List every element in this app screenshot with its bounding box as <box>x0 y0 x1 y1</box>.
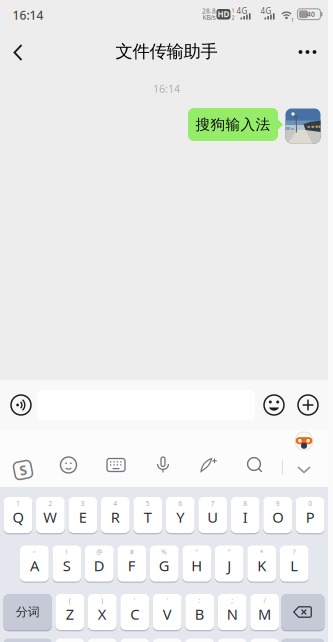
staticText: KB/s <box>202 13 215 22</box>
button[interactable]: ! <box>52 544 81 582</box>
button[interactable]: ~ <box>20 544 49 582</box>
button[interactable] <box>105 454 127 476</box>
staticText: 文件传输助手 <box>115 41 217 62</box>
button[interactable] <box>285 108 320 143</box>
button[interactable] <box>294 430 314 451</box>
button[interactable] <box>57 454 79 476</box>
staticText: ; <box>231 596 233 605</box>
staticText: HD <box>217 9 229 19</box>
button[interactable] <box>261 392 287 418</box>
button[interactable]: 2 <box>36 496 65 534</box>
staticText: ? <box>293 548 296 556</box>
button[interactable]: 4 <box>101 496 130 534</box>
staticText: 7 <box>211 499 215 508</box>
staticText: I <box>243 507 248 527</box>
staticText: # <box>130 548 134 556</box>
staticText: 2 <box>48 499 52 508</box>
staticText: 16:14 <box>12 7 43 23</box>
staticText: 4G <box>260 6 271 16</box>
button[interactable] <box>197 454 221 476</box>
staticText: 8 <box>243 499 247 508</box>
button[interactable]: " <box>182 544 211 582</box>
staticText: N <box>227 604 238 624</box>
staticText: 2 <box>231 14 234 21</box>
button[interactable] <box>295 392 321 418</box>
staticText: ) <box>101 596 103 605</box>
staticText: A <box>30 556 39 575</box>
staticText: ~ <box>32 548 36 556</box>
button[interactable] <box>292 37 322 67</box>
staticText: 1 <box>16 499 20 508</box>
button[interactable]: 分词 <box>3 593 52 631</box>
button[interactable]: ' <box>153 593 182 631</box>
button[interactable]: 1 <box>3 496 32 534</box>
staticText: V <box>163 604 172 624</box>
button[interactable]: ( <box>55 593 84 631</box>
staticText: B <box>195 604 205 624</box>
staticText: 9 <box>276 499 280 508</box>
button[interactable]: ? <box>280 544 309 582</box>
staticText: 4G <box>236 6 247 16</box>
button[interactable] <box>244 454 266 476</box>
button[interactable]: ; <box>218 593 247 631</box>
button[interactable]: " <box>215 544 244 582</box>
staticText: E <box>79 507 87 527</box>
staticText: : <box>199 596 201 605</box>
button[interactable]: ' <box>120 593 149 631</box>
staticText: T <box>144 507 152 527</box>
staticText: M <box>258 604 271 624</box>
staticText: Z <box>66 604 74 624</box>
staticText: 40 <box>307 10 315 19</box>
staticText: " <box>228 548 231 556</box>
staticText: D <box>94 556 105 575</box>
staticText: ' <box>166 596 168 605</box>
staticText: G <box>159 556 170 575</box>
staticText: P <box>306 507 315 527</box>
staticText: R <box>111 507 120 527</box>
button[interactable] <box>152 454 174 476</box>
button[interactable]: @ <box>85 544 114 582</box>
staticText: " <box>195 548 198 556</box>
button[interactable] <box>294 463 314 477</box>
staticText: 1 <box>231 7 234 14</box>
button[interactable]: 6 <box>166 496 195 534</box>
button[interactable] <box>3 37 33 67</box>
button[interactable]: # <box>117 544 146 582</box>
staticText: 6 <box>178 499 182 508</box>
button[interactable]: S <box>10 457 36 483</box>
staticText: U <box>207 507 218 527</box>
button[interactable]: 9 <box>263 496 292 534</box>
staticText: F <box>128 556 136 575</box>
staticText: 0 <box>308 499 312 508</box>
staticText: 1 <box>291 16 294 24</box>
staticText: Q <box>12 507 23 527</box>
button[interactable]: 0 <box>296 496 324 534</box>
staticText: ( <box>69 596 71 605</box>
staticText: W <box>43 507 57 527</box>
staticText: 分词 <box>16 605 40 619</box>
staticText: 3 <box>81 499 85 508</box>
staticText: * <box>260 548 264 556</box>
button[interactable]: 3 <box>68 496 97 534</box>
staticText: C <box>130 604 139 624</box>
button[interactable]: 5 <box>133 496 162 534</box>
staticText: % <box>161 548 167 556</box>
button[interactable]: % <box>150 544 179 582</box>
button[interactable]: : <box>185 593 214 631</box>
button[interactable]: ) <box>88 593 117 631</box>
staticText: 搜狗输入法 <box>195 115 270 133</box>
button[interactable] <box>8 392 34 418</box>
button[interactable]: * <box>247 544 276 582</box>
staticText: 28.8 <box>202 7 216 15</box>
staticText: 4 <box>113 499 117 508</box>
button[interactable]: / <box>250 593 279 631</box>
staticText: 5 <box>146 499 150 508</box>
staticText: ' <box>134 596 136 605</box>
staticText: @ <box>96 548 102 556</box>
button[interactable]: 7 <box>198 496 227 534</box>
staticText: ! <box>66 548 68 556</box>
button[interactable] <box>281 593 324 631</box>
staticText: L <box>290 556 298 575</box>
button[interactable]: 8 <box>231 496 260 534</box>
